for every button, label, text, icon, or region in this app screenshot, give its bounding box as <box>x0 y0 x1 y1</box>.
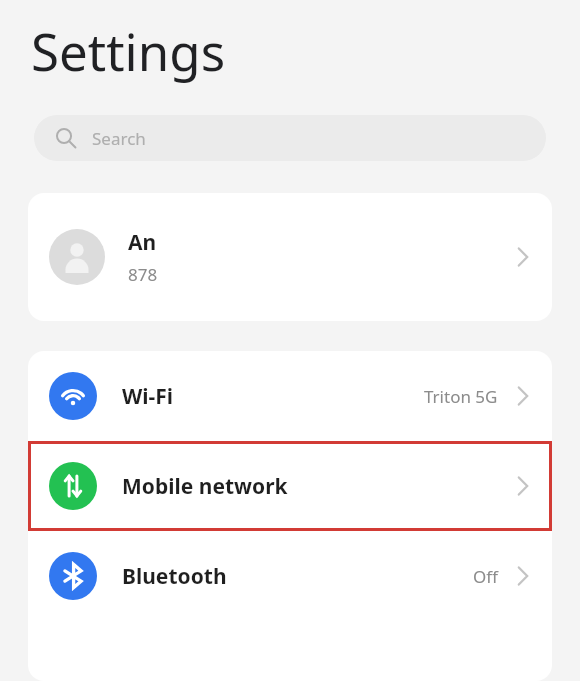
staticText: 878 <box>128 263 158 286</box>
button[interactable]: Wi-Fi <box>28 351 552 441</box>
staticText: Mobile network <box>122 472 288 501</box>
other: Mobile network <box>49 462 97 510</box>
staticText: Triton 5G <box>424 385 498 408</box>
staticText: Bluetooth <box>122 562 227 591</box>
staticText: Wi-Fi <box>122 382 174 411</box>
staticText: Settings <box>31 16 226 85</box>
other: Wi-Fi <box>49 372 97 420</box>
staticText: Off <box>473 565 498 588</box>
staticText: Search <box>92 127 146 150</box>
other: Bluetooth <box>49 552 97 600</box>
staticText: An <box>128 228 157 257</box>
button[interactable]: An <box>28 193 552 321</box>
button[interactable]: Bluetooth <box>28 531 552 621</box>
button[interactable]: Mobile network <box>28 441 552 531</box>
button[interactable]: Search <box>34 115 546 161</box>
